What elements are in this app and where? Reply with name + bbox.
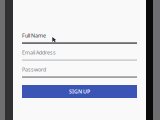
staticText: Password — [22, 66, 46, 73]
button[interactable]: SIGN UP — [22, 85, 137, 98]
staticText: Email Address — [22, 49, 56, 56]
button[interactable]: Email Address — [22, 49, 137, 61]
staticText: Full Name — [22, 32, 46, 39]
button[interactable]: Password — [22, 66, 137, 78]
button[interactable]: Full Name — [22, 32, 137, 44]
staticText: SIGN UP — [69, 88, 90, 95]
